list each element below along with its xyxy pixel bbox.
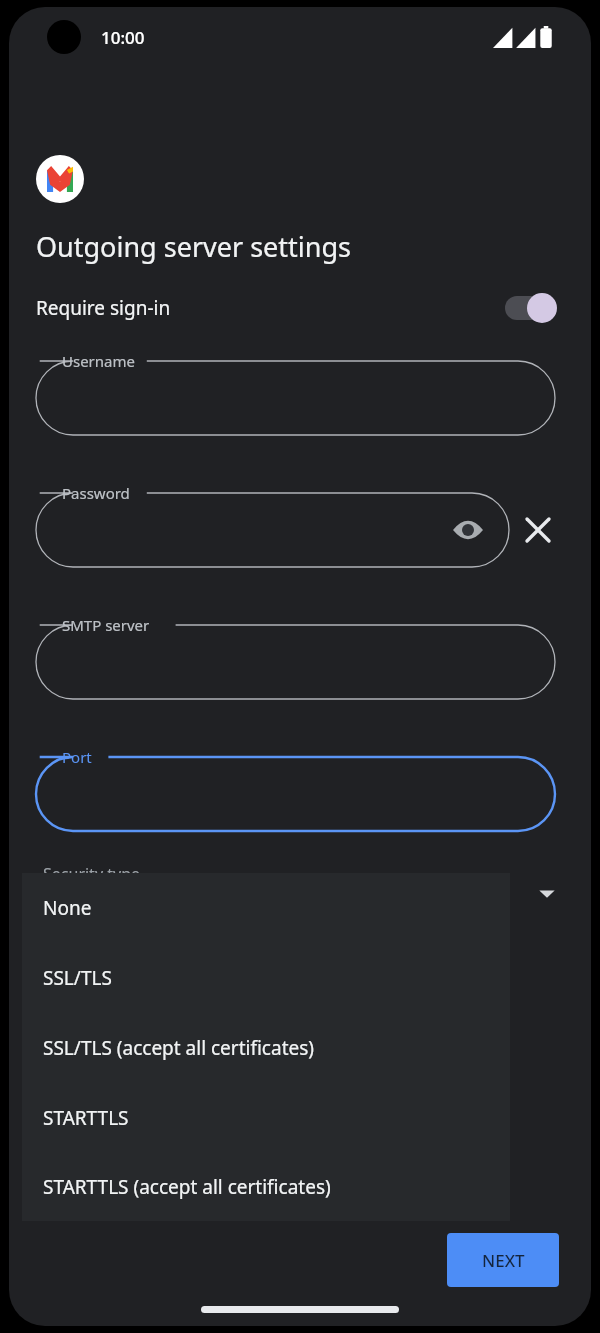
staticText: STARTTLS: [43, 1105, 129, 1131]
staticText: Username: [62, 351, 135, 371]
button[interactable]: STARTTLS (accept all certificates): [22, 1153, 510, 1221]
button[interactable]: STARTTLS: [22, 1083, 510, 1153]
button[interactable]: Clear password: [523, 515, 553, 545]
staticText: NEXT: [482, 1249, 525, 1272]
button[interactable]: SSL/TLS (accept all certificates): [22, 1013, 510, 1083]
staticText: SSL/TLS (accept all certificates): [43, 1035, 315, 1061]
button[interactable]: Username: [36, 347, 555, 435]
button[interactable]: Port: [36, 743, 555, 831]
staticText: Security type: [43, 863, 141, 885]
staticText: 10:00: [101, 26, 145, 49]
staticText: STARTTLS (accept all certificates): [43, 1174, 331, 1200]
button[interactable]: None: [22, 873, 510, 943]
staticText: Require sign-in: [36, 295, 171, 321]
staticText: SMTP server: [62, 615, 150, 635]
staticText: Password: [62, 483, 130, 503]
button[interactable]: NEXT: [447, 1233, 559, 1287]
staticText: SSL/TLS: [43, 965, 112, 991]
button[interactable]: Password: [36, 479, 509, 567]
staticText: Port: [62, 747, 92, 767]
staticText: Outgoing server settings: [36, 228, 352, 265]
button[interactable]: SSL/TLS: [22, 943, 510, 1013]
staticText: None: [43, 895, 92, 921]
button[interactable]: Open security type menu: [535, 881, 559, 905]
button[interactable]: Show password: [453, 520, 483, 540]
button[interactable]: Require sign-in: [9, 285, 591, 331]
button[interactable]: SMTP server: [36, 611, 555, 699]
